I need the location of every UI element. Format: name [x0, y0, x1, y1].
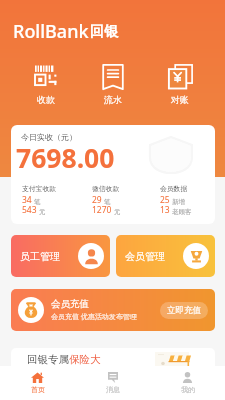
staticText: 员工管理: [20, 250, 60, 263]
staticText: 13: [160, 204, 170, 216]
button[interactable]: 首页: [0, 366, 75, 400]
staticText: 元: [39, 208, 46, 216]
staticText: 34: [22, 194, 32, 206]
staticText: 回银: [90, 23, 118, 41]
staticText: 会员充值: [51, 298, 89, 310]
button[interactable]: 消息: [75, 366, 150, 400]
staticText: 保险大: [69, 353, 101, 366]
button[interactable]: 员工管理: [11, 235, 110, 277]
staticText: 流水: [104, 94, 122, 105]
button[interactable]: 我的: [150, 366, 225, 400]
staticText: 立即充值: [167, 305, 201, 316]
staticText: 笔: [34, 198, 41, 206]
button[interactable]: 收款: [12, 63, 79, 105]
staticText: 新增: [172, 198, 185, 206]
staticText: 543: [22, 204, 37, 216]
staticText: 我的: [181, 385, 195, 394]
button[interactable]: 立即充值: [160, 302, 208, 319]
button[interactable]: 流水: [79, 63, 146, 105]
staticText: 消息: [106, 385, 120, 394]
staticText: 会员充值 优惠活动发布管理: [51, 312, 137, 322]
staticText: 7698.00: [16, 140, 115, 176]
staticText: 1270: [92, 204, 112, 216]
button[interactable]: 对账: [146, 63, 213, 105]
staticText: 首页: [31, 385, 45, 394]
staticText: 收款: [37, 94, 55, 105]
staticText: 微信收款: [92, 184, 120, 193]
staticText: 支付宝收款: [22, 184, 56, 193]
button[interactable]: 回银专属: [11, 348, 215, 390]
button[interactable]: 今日实收（元）: [11, 125, 215, 224]
staticText: 29: [92, 194, 102, 206]
staticText: 元: [114, 208, 121, 216]
staticText: 会员管理: [125, 250, 165, 263]
button[interactable]: 会员管理: [116, 235, 215, 277]
staticText: 老顾客: [172, 208, 192, 216]
staticText: 会员数据: [160, 184, 188, 193]
staticText: 今日实收（元）: [21, 132, 77, 142]
staticText: 回银专属: [27, 353, 69, 366]
staticText: 对账: [171, 94, 189, 105]
staticText: 25: [160, 194, 170, 206]
staticText: RollBank: [13, 19, 89, 44]
button[interactable]: 会员充值: [11, 289, 215, 331]
staticText: 笔: [104, 198, 111, 206]
